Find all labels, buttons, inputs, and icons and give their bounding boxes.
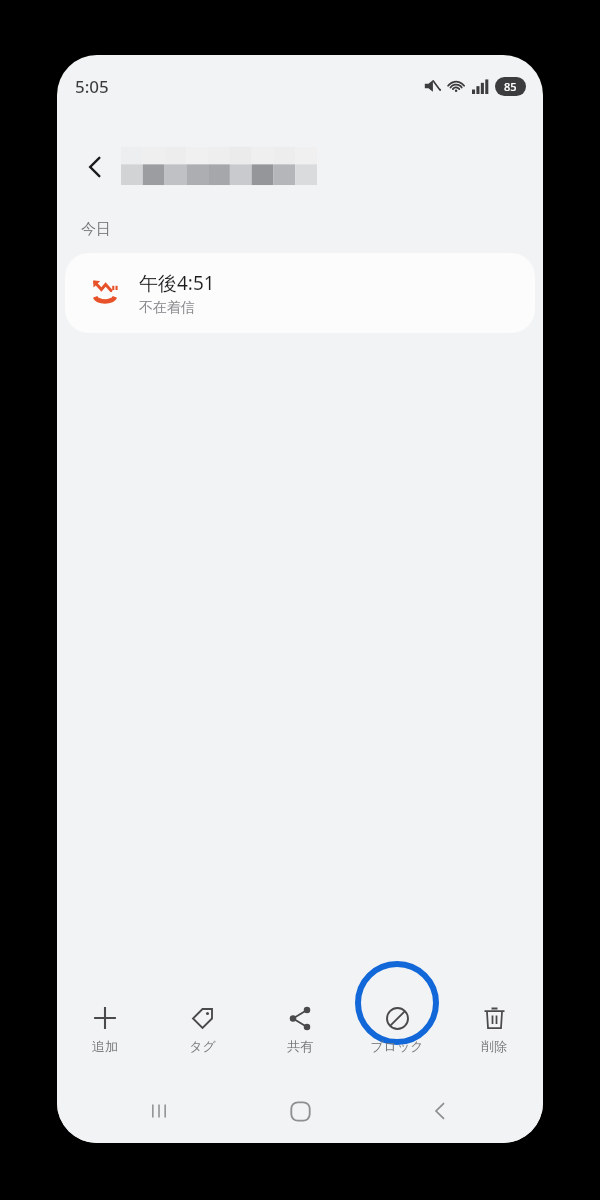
staticText: 共有 — [287, 1038, 313, 1054]
button[interactable]: ブロック — [359, 1003, 435, 1065]
staticText: 85 — [504, 79, 517, 94]
button[interactable]: タグ — [164, 1003, 240, 1065]
staticText: 午後4:51 — [139, 270, 215, 296]
staticText: 今日 — [81, 220, 111, 239]
button[interactable]: 共有 — [262, 1003, 338, 1065]
button[interactable]: 追加 — [67, 1003, 143, 1065]
button[interactable]: 削除 — [456, 1003, 532, 1065]
staticText: 追加 — [92, 1038, 118, 1054]
button[interactable]: Home — [276, 1087, 324, 1135]
button[interactable]: Back — [73, 145, 117, 189]
button[interactable]: Recent apps — [135, 1087, 183, 1135]
button[interactable]: Back — [416, 1087, 464, 1135]
staticText: ブロック — [370, 1038, 424, 1054]
staticText: タグ — [189, 1038, 216, 1054]
button[interactable]: 午後4:51 — [65, 253, 535, 333]
staticText: 5:05 — [75, 75, 109, 98]
staticText: 削除 — [481, 1038, 507, 1054]
staticText: 不在着信 — [139, 299, 195, 317]
